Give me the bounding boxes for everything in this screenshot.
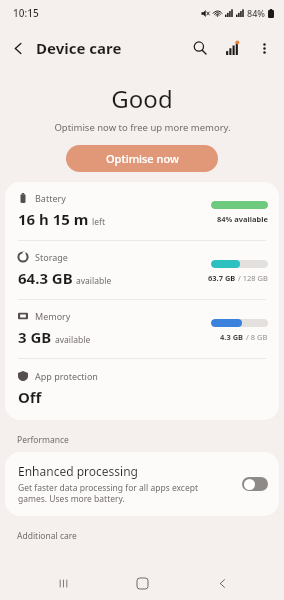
staticText: 16 h 15 m <box>18 209 89 229</box>
button[interactable]: Battery <box>5 182 279 240</box>
staticText: 4.3 GB <box>220 332 244 342</box>
button[interactable]: Optimise now <box>66 145 218 172</box>
button[interactable]: App protection <box>5 359 279 420</box>
button[interactable]: Back <box>205 566 239 600</box>
button[interactable]: Storage <box>5 241 279 299</box>
staticText: Memory <box>35 310 71 322</box>
staticText: 64.3 GB <box>18 268 73 288</box>
button[interactable]: Enhanced processing <box>5 452 279 516</box>
staticText: Additional care <box>17 530 77 542</box>
staticText: 84% <box>247 7 265 19</box>
button[interactable]: Enhanced processing toggle <box>242 477 268 491</box>
staticText: Device care <box>36 38 122 58</box>
staticText: Good <box>111 82 173 115</box>
button[interactable]: Search <box>184 32 216 64</box>
button[interactable]: More options <box>248 32 280 64</box>
button[interactable]: Home <box>125 566 159 600</box>
staticText: 3 GB <box>18 327 52 347</box>
staticText: Get faster data processing for all apps … <box>18 482 218 504</box>
button[interactable]: Usage statistics <box>216 32 248 64</box>
staticText: 10:15 <box>13 6 39 20</box>
staticText: Battery <box>35 192 66 204</box>
staticText: Enhanced processing <box>18 463 138 479</box>
staticText: Storage <box>35 251 68 263</box>
button[interactable]: Recents <box>46 566 80 600</box>
staticText: App protection <box>35 370 98 382</box>
staticText: / 128 GB <box>236 273 268 283</box>
staticText: available <box>55 334 91 346</box>
staticText: 63.7 GB <box>208 273 236 283</box>
staticText: Performance <box>17 434 69 446</box>
staticText: Off <box>18 387 42 407</box>
staticText: left <box>92 216 105 228</box>
staticText: available <box>76 275 112 287</box>
staticText: / 8 GB <box>244 332 268 342</box>
button[interactable]: Back <box>0 30 36 66</box>
staticText: 84% available <box>217 214 268 224</box>
staticText: Optimise now <box>106 151 179 166</box>
staticText: Optimise now to free up more memory. <box>54 121 231 134</box>
button[interactable]: Memory <box>5 300 279 358</box>
